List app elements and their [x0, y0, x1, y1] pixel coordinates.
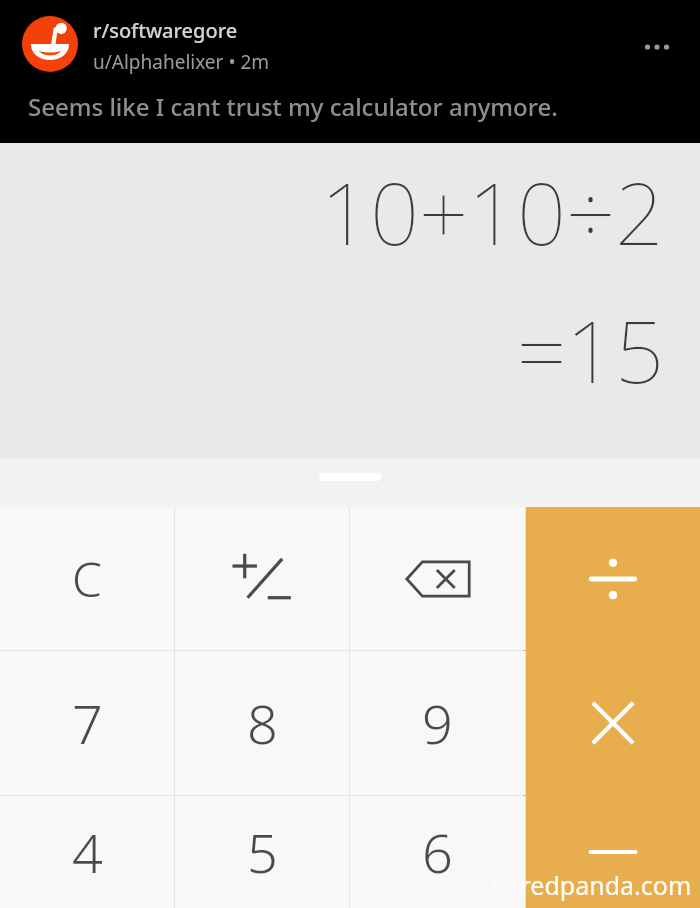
button[interactable]: Subreddit avatar: [22, 16, 78, 72]
button[interactable]: Backspace: [350, 507, 525, 650]
staticText: =15: [516, 291, 664, 408]
button[interactable]: 7: [0, 651, 174, 795]
button[interactable]: 9: [350, 651, 525, 795]
staticText: 10+10÷2: [320, 153, 664, 270]
staticText: 6: [422, 815, 453, 889]
staticText: u/Alphahelixer • 2m: [93, 49, 270, 75]
staticText: boredpanda.com: [490, 868, 692, 902]
button[interactable]: 4: [0, 796, 174, 908]
staticText: 8: [247, 686, 278, 760]
button[interactable]: 6: [350, 796, 525, 908]
staticText: 9: [422, 686, 453, 760]
staticText: Seems like I cant trust my calculator an…: [28, 90, 558, 123]
button[interactable]: 5: [175, 796, 349, 908]
button[interactable]: 8: [175, 651, 349, 795]
button[interactable]: Clear: [0, 507, 174, 650]
button[interactable]: Multiply: [526, 651, 700, 795]
button[interactable]: More options: [636, 26, 678, 68]
staticText: 7: [72, 686, 103, 760]
staticText: C: [72, 546, 102, 611]
staticText: r/softwaregore: [93, 17, 238, 44]
button[interactable]: Divide: [526, 507, 700, 650]
staticText: 5: [247, 815, 278, 889]
button[interactable]: Toggle sign: [175, 507, 349, 650]
staticText: 4: [72, 815, 103, 889]
button[interactable]: Subtract: [526, 796, 700, 908]
